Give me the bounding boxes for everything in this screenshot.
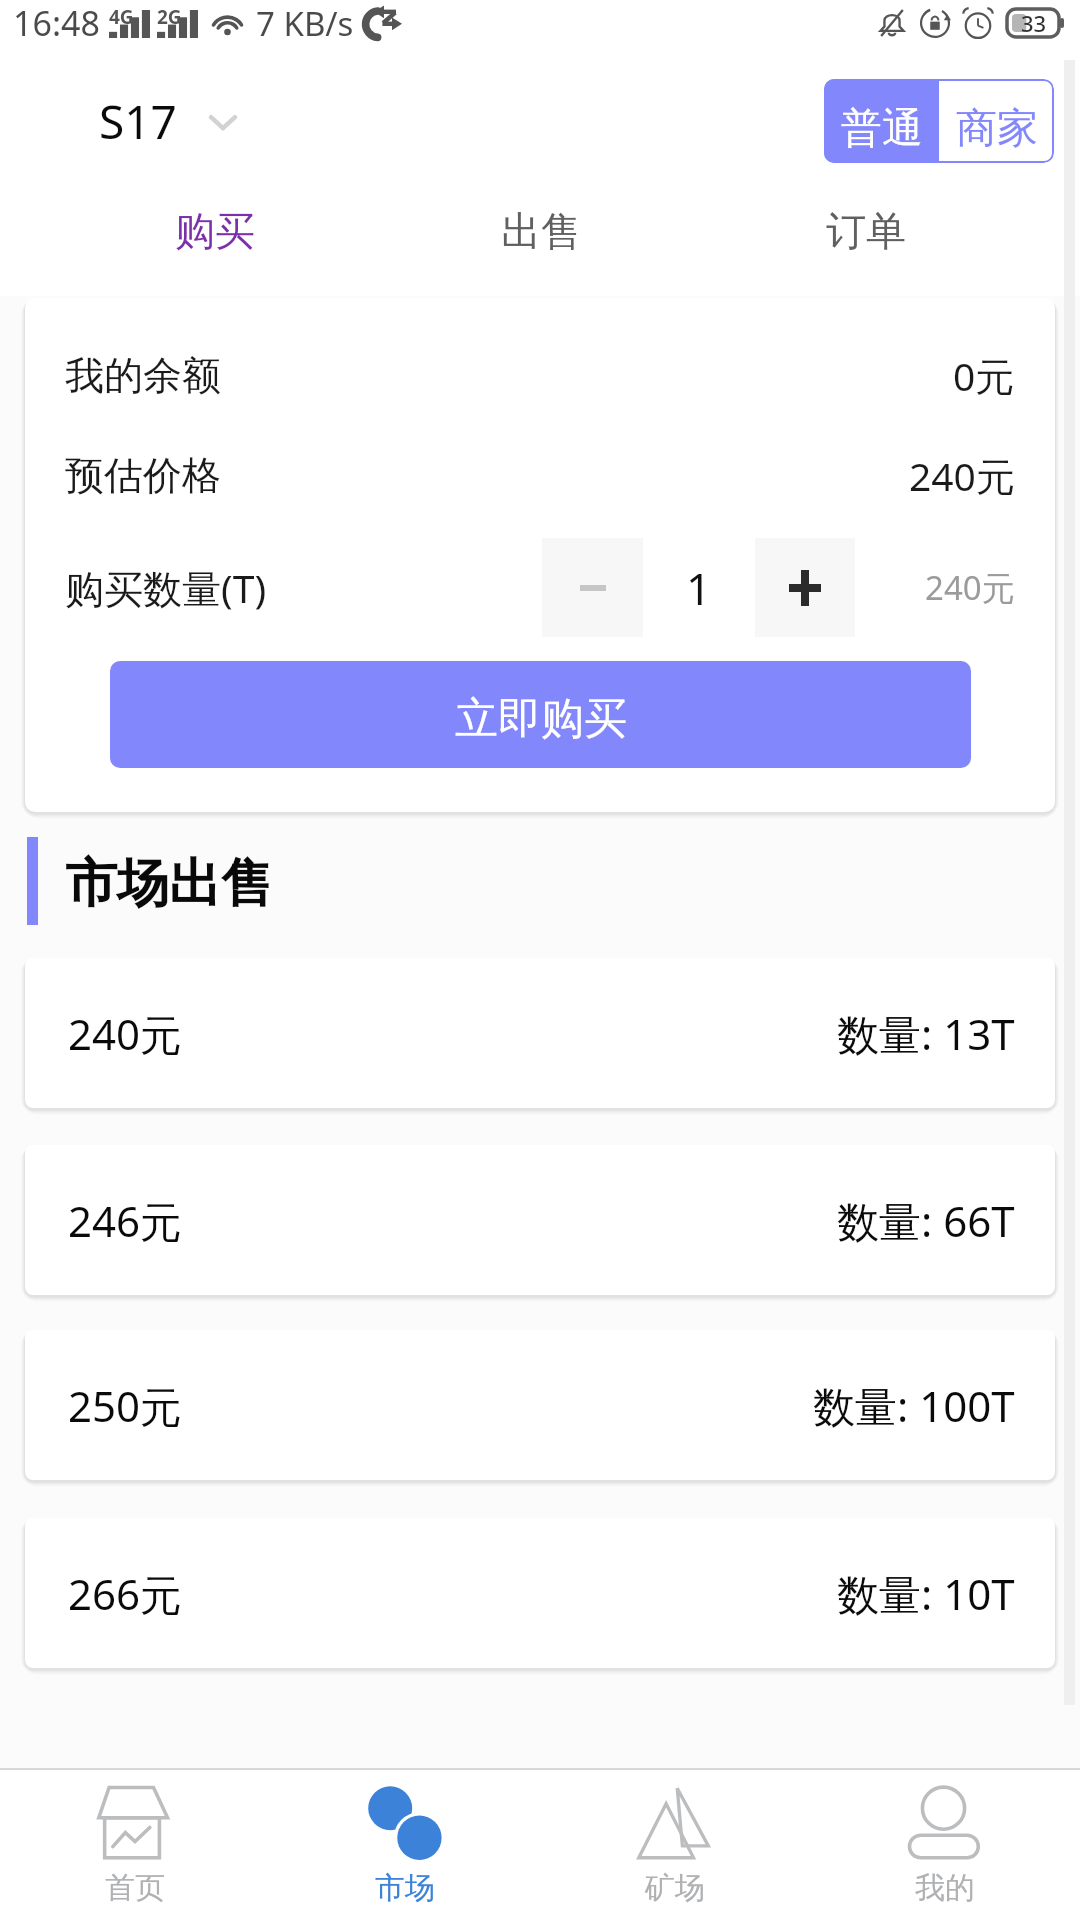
staticText: 矿场 [645,1869,705,1907]
staticText: 我的 [915,1869,975,1907]
staticText: 市场出售 [65,851,273,917]
button[interactable]: 市场 [270,1770,540,1920]
staticText: 266元 [68,1565,183,1622]
staticText: 2G [157,4,182,30]
staticText: 立即购买 [455,692,627,746]
button[interactable]: 出售 [378,176,703,296]
staticText: 商家 [956,103,1038,155]
button[interactable]: 266元 [25,1518,1055,1668]
staticText: 240元 [909,449,1015,502]
staticText: 数量: 100T [813,1377,1015,1434]
button[interactable]: 250元 [25,1330,1055,1480]
staticText: 1 [686,558,712,618]
button[interactable]: 立即购买 [110,661,971,768]
button[interactable]: 首页 [0,1770,270,1920]
button[interactable]: 购买 [52,176,378,296]
staticText: 市场 [375,1869,435,1907]
button[interactable]: 我的 [810,1770,1080,1920]
button[interactable]: 240元 [25,958,1055,1108]
staticText: 16:48 [13,0,100,46]
staticText: 订单 [826,206,906,256]
staticText: 我的余额 [65,351,221,400]
staticText: 首页 [105,1869,165,1907]
staticText: 0元 [953,349,1015,402]
staticText: 240元 [68,1005,183,1062]
button[interactable]: 矿场 [540,1770,810,1920]
staticText: 250元 [68,1377,183,1434]
button[interactable]: Decrease quantity [542,538,643,637]
button[interactable]: 订单 [703,176,1028,296]
staticText: 数量: 13T [837,1005,1015,1062]
staticText: 4G [109,4,134,30]
staticText: 预估价格 [65,451,221,500]
staticText: 246元 [68,1192,183,1249]
staticText: 出售 [501,206,581,256]
staticText: 7 KB/s [256,1,354,46]
staticText: 数量: 10T [837,1565,1015,1622]
button[interactable]: 商家 [939,79,1054,163]
staticText: S17 [99,90,177,153]
staticText: 购买 [175,206,255,256]
button[interactable]: 246元 [25,1145,1055,1295]
button[interactable]: 普通 [824,79,939,163]
staticText: 数量: 66T [837,1192,1015,1249]
button[interactable]: S17 [95,80,241,163]
staticText: 240元 [925,565,1015,610]
staticText: 普通 [841,103,923,155]
staticText: 33 [1021,8,1047,38]
button[interactable]: Increase quantity [755,538,855,637]
staticText: 购买数量(T) [65,561,267,614]
